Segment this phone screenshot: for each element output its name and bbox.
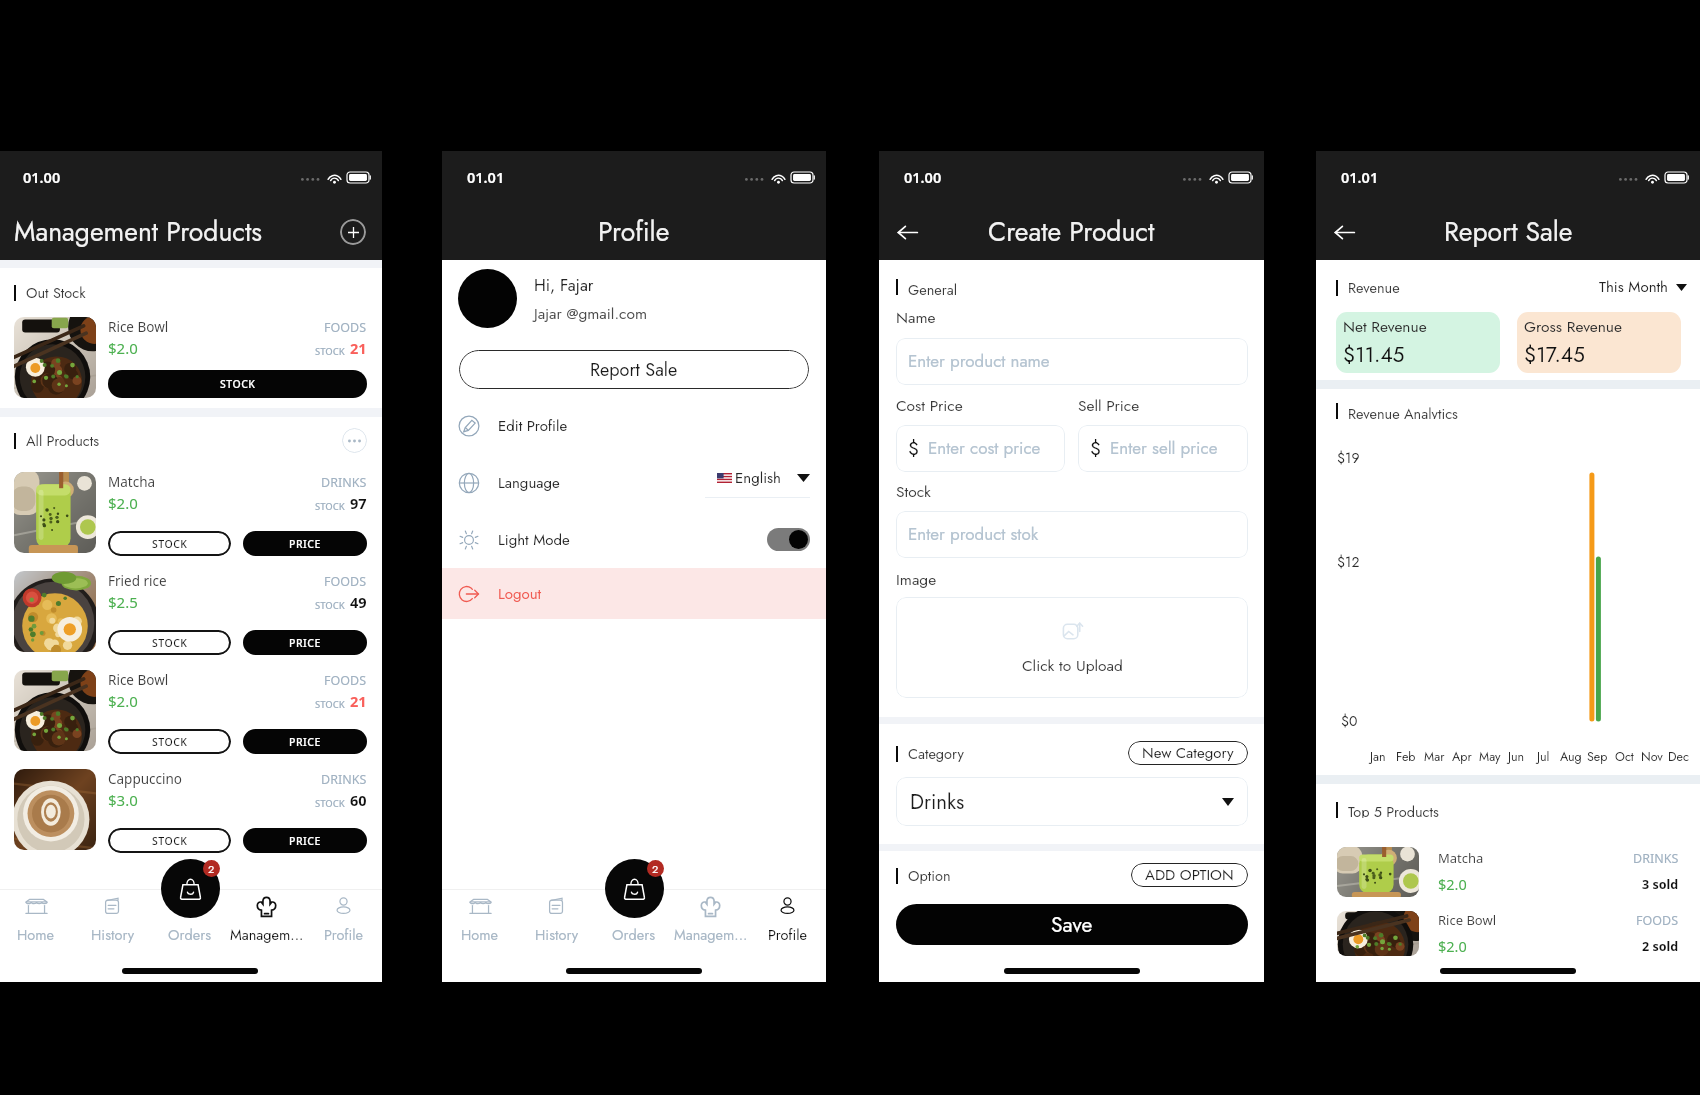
staticText: 2 [652,861,659,877]
button[interactable]: History [518,890,595,950]
button[interactable]: Click to Upload [896,597,1248,698]
staticText: Managem... [230,924,304,945]
staticText: Fried rice [108,572,167,590]
button[interactable]: This Month [1599,276,1687,298]
staticText: Rice Bowl [1438,911,1497,929]
staticText: $2.0 [108,338,138,358]
button[interactable]: Home [442,890,518,950]
button[interactable]: STOCK [108,370,367,398]
staticText: PRICE [289,834,321,848]
staticText: Report Sale [1444,213,1573,251]
staticText: PRICE [289,636,321,650]
staticText: 3 sold [1642,876,1679,893]
button[interactable]: Orders [151,890,228,950]
staticText: History [535,924,579,945]
button[interactable]: Orders [605,859,664,918]
button[interactable]: Back [1327,215,1361,249]
button[interactable]: Rice Bowl [14,317,367,398]
button[interactable]: PRICE [243,630,367,655]
staticText: $2.0 [108,493,138,513]
staticText: Orders [612,924,655,945]
staticText: STOCK [315,797,345,810]
button[interactable]: Home [0,890,74,950]
button[interactable]: STOCK [108,531,231,556]
button[interactable]: Cappuccino [14,769,367,853]
button[interactable]: Enter product name [908,338,1236,385]
staticText: STOCK [220,377,256,391]
staticText: FOODS [324,319,367,336]
staticText: Sell Price [1078,394,1140,416]
button[interactable]: PRICE [243,828,367,853]
button[interactable]: Enter product stok [908,511,1236,558]
staticText: DRINKS [321,474,367,491]
staticText: Out Stock [26,282,86,303]
button[interactable]: Fried rice [14,571,367,655]
button[interactable]: $ [1090,425,1236,472]
button[interactable]: PRICE [243,729,367,754]
staticText: 21 [350,691,367,711]
button[interactable] [767,528,810,551]
staticText: 01.00 [23,167,61,187]
staticText: All Products [26,430,100,451]
button[interactable]: Orders [161,859,220,918]
button[interactable]: Save [896,904,1248,945]
staticText: Save [1051,910,1093,940]
button[interactable]: STOCK [108,729,231,754]
button[interactable]: Edit Profile [458,397,810,454]
button[interactable]: New Category [1142,741,1234,765]
button[interactable]: Matcha [14,472,367,556]
staticText: Gross Revenue [1524,315,1622,337]
staticText: Jun [1508,748,1525,766]
staticText: Enter product stok [908,522,1039,547]
staticText: Report Sale [590,357,678,383]
button[interactable]: PRICE [243,531,367,556]
staticText: $2.0 [108,691,138,711]
staticText: STOCK [315,345,345,358]
button[interactable]: ADD OPTION [1145,863,1234,887]
staticText: Edit Profile [498,415,568,437]
button[interactable]: Matcha [1337,846,1679,897]
button[interactable]: Report Sale [459,350,809,389]
staticText: Revenue Analytics [1348,403,1458,419]
staticText: Home [461,924,499,945]
button[interactable]: Language [458,454,810,511]
staticText: ADD OPTION [1145,864,1234,886]
staticText: Dec [1668,748,1689,766]
button[interactable]: Drinks [910,777,1234,826]
staticText: Image [896,568,937,590]
button[interactable]: Logout [458,568,826,619]
staticText: $12 [1337,552,1360,572]
button[interactable]: Rice Bowl [1337,911,1679,956]
staticText: Top 5 Products [1348,801,1439,818]
button[interactable]: Light Mode [458,511,810,568]
button[interactable]: Profile [305,890,382,950]
staticText: $2.5 [108,592,138,612]
staticText: 2 [208,861,215,877]
staticText: Jan [1370,748,1386,766]
button[interactable]: STOCK [108,630,231,655]
staticText: Stock [896,480,931,502]
button[interactable]: Gross Revenue [1524,312,1681,373]
button[interactable]: Net Revenue [1343,312,1500,373]
staticText: STOCK [315,599,345,612]
button[interactable]: $ [908,425,1053,472]
button[interactable]: History [74,890,151,950]
button[interactable]: Profile [749,890,826,950]
staticText: English [735,467,781,489]
button[interactable]: Orders [595,890,672,950]
staticText: STOCK [315,500,345,513]
button[interactable]: Rice Bowl [14,670,367,754]
button[interactable]: Managem... [228,890,305,950]
staticText: STOCK [152,636,188,650]
staticText: Drinks [910,787,965,817]
button[interactable]: Back [890,215,924,249]
staticText: History [91,924,135,945]
staticText: Name [896,306,936,328]
button[interactable]: STOCK [108,828,231,853]
button[interactable]: Managem... [672,890,749,950]
staticText: Cappuccino [108,770,183,788]
staticText: PRICE [289,537,321,551]
button[interactable]: Add product [340,219,366,245]
staticText: Category [908,743,964,764]
button[interactable]: More options [342,428,367,453]
